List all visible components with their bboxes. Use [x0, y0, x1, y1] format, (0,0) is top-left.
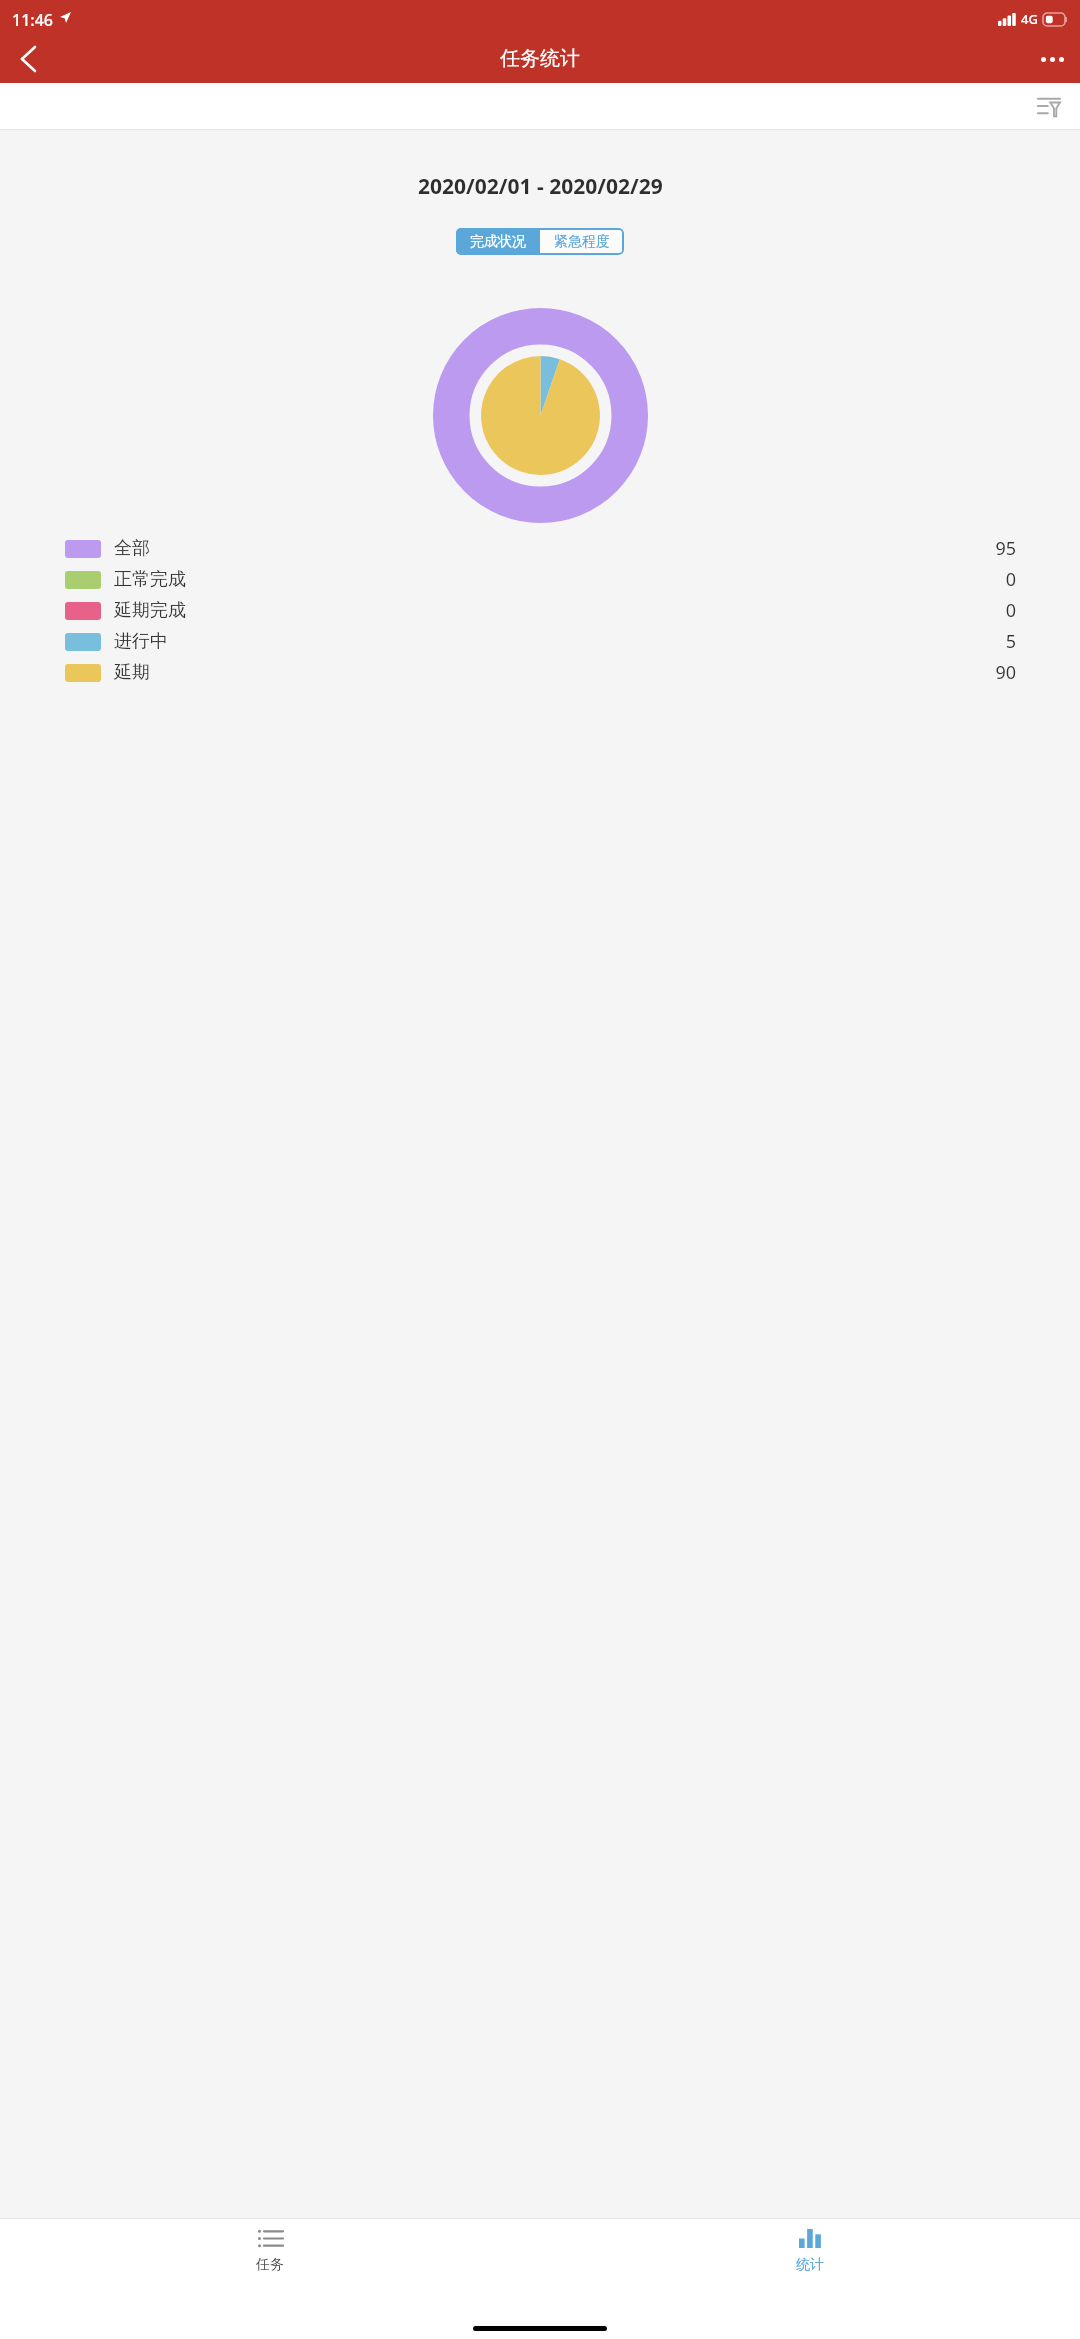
staticText: 全部: [114, 537, 150, 560]
staticText: 正常完成: [114, 568, 186, 591]
staticText: 5: [1005, 629, 1016, 654]
staticText: 4G: [1021, 10, 1038, 28]
staticText: 统计: [796, 2256, 824, 2274]
button[interactable]: Filter: [1026, 83, 1072, 129]
staticText: 完成状况: [470, 233, 526, 251]
button[interactable]: 延期: [65, 657, 1016, 688]
button[interactable]: Back: [0, 35, 56, 83]
staticText: 进行中: [114, 630, 168, 653]
staticText: 任务: [256, 2256, 284, 2274]
staticText: 紧急程度: [554, 233, 610, 251]
button[interactable]: 正常完成: [65, 564, 1016, 595]
button[interactable]: More options: [1024, 35, 1080, 83]
staticText: 0: [1005, 598, 1016, 623]
button[interactable]: 紧急程度: [540, 228, 624, 255]
button[interactable]: 进行中: [65, 626, 1016, 657]
staticText: 90: [995, 660, 1016, 685]
button[interactable]: 统计: [540, 2219, 1080, 2305]
button[interactable]: 完成状况: [456, 228, 539, 255]
staticText: 11:46: [12, 9, 53, 31]
staticText: 延期: [114, 661, 150, 684]
staticText: 0: [1005, 567, 1016, 592]
staticText: 任务统计: [500, 46, 580, 71]
button[interactable]: 全部: [65, 533, 1016, 564]
staticText: 延期完成: [114, 599, 186, 622]
staticText: 2020/02/01 - 2020/02/29: [418, 172, 663, 201]
button[interactable]: 延期完成: [65, 595, 1016, 626]
button[interactable]: 任务: [0, 2219, 540, 2305]
staticText: 95: [995, 536, 1016, 561]
